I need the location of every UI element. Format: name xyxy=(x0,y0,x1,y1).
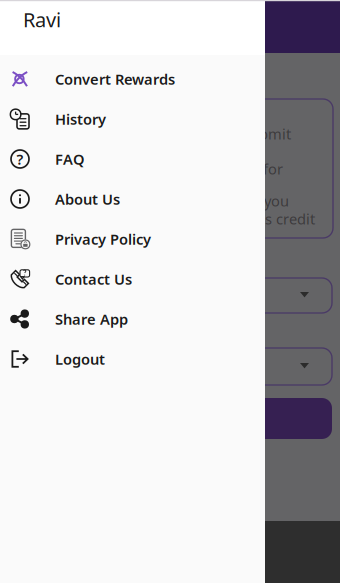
staticText: You can convert the rewards you xyxy=(65,191,289,210)
staticText: Points will be credited on submit xyxy=(65,124,291,143)
staticText: Logout xyxy=(55,349,105,369)
staticText: FAQ xyxy=(55,149,85,169)
button[interactable]: Contact Us xyxy=(0,259,265,299)
staticText: Ravi xyxy=(23,6,61,33)
staticText: Contact Us xyxy=(55,269,132,289)
button[interactable]: Share App xyxy=(0,299,265,339)
staticText: Share App xyxy=(55,309,128,329)
button[interactable]: Logout xyxy=(0,339,265,379)
staticText: ? xyxy=(16,149,23,169)
staticText: History xyxy=(55,109,106,129)
staticText: Your reward points are valid for xyxy=(65,159,283,178)
button[interactable]: About Us xyxy=(0,179,265,219)
button[interactable]: Convert Rewards xyxy=(0,59,265,99)
button[interactable]: History xyxy=(0,99,265,139)
staticText: Convert Rewards xyxy=(55,69,175,89)
button[interactable]: ? xyxy=(0,139,265,179)
button[interactable]: Privacy Policy xyxy=(0,219,265,259)
staticText: Privacy Policy xyxy=(55,229,151,249)
staticText: have earned in this account as credit in… xyxy=(65,209,315,248)
staticText: About Us xyxy=(55,189,120,209)
